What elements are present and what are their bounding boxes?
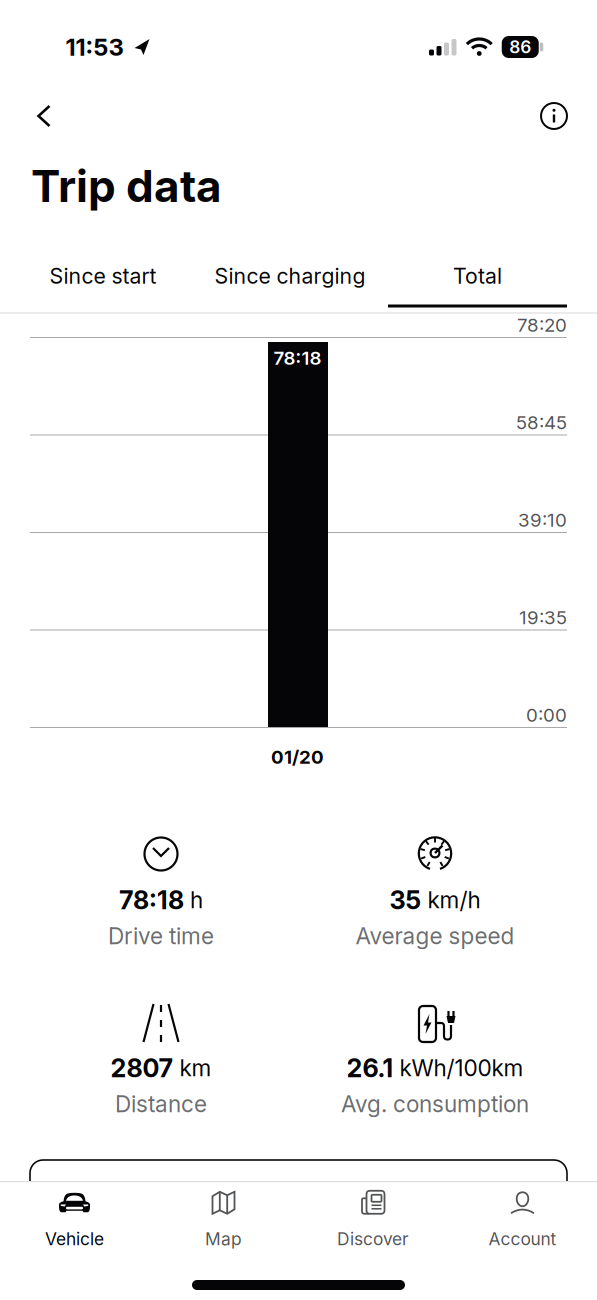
staticText: Avg. consumption	[341, 1091, 529, 1117]
button[interactable]: Discover	[308, 1190, 438, 1250]
staticText: Since charging	[214, 263, 365, 289]
staticText: Map	[205, 1229, 242, 1249]
button[interactable]: Since start	[10, 254, 196, 298]
staticText: 39:10	[518, 509, 567, 531]
staticText: Total	[453, 263, 502, 289]
staticText: h	[190, 887, 203, 913]
button[interactable]: Vehicle	[9, 1190, 139, 1250]
staticText: Distance	[115, 1091, 207, 1117]
staticText: 11:53	[65, 33, 123, 61]
button[interactable]: Map	[158, 1190, 288, 1250]
staticText: 78:18	[273, 347, 321, 369]
staticText: 19:35	[519, 606, 567, 628]
staticText: Discover	[337, 1229, 409, 1249]
staticText: 58:45	[516, 411, 567, 433]
staticText: Vehicle	[45, 1229, 104, 1249]
staticText: Average speed	[355, 923, 514, 949]
staticText: kWh/100km	[399, 1055, 523, 1081]
button[interactable]: Since charging	[197, 254, 383, 298]
staticText: 01/20	[271, 746, 324, 768]
staticText: 0:00	[526, 704, 567, 726]
staticText: 86	[509, 37, 531, 57]
staticText: Account	[488, 1229, 556, 1249]
staticText: 35	[389, 885, 421, 915]
button[interactable]: Account	[457, 1190, 587, 1250]
staticText: km	[179, 1055, 211, 1081]
button[interactable]: Info	[532, 96, 576, 136]
staticText: 26.1	[346, 1053, 393, 1083]
staticText: 78:18	[119, 885, 184, 915]
button[interactable]: Total	[384, 254, 570, 298]
staticText: Trip data	[31, 160, 222, 212]
staticText: Since start	[49, 263, 156, 289]
staticText: Drive time	[108, 923, 214, 949]
button[interactable]: Back	[22, 96, 66, 136]
staticText: km/h	[427, 887, 480, 913]
staticText: 78:20	[517, 314, 567, 336]
staticText: 2807	[110, 1053, 173, 1083]
